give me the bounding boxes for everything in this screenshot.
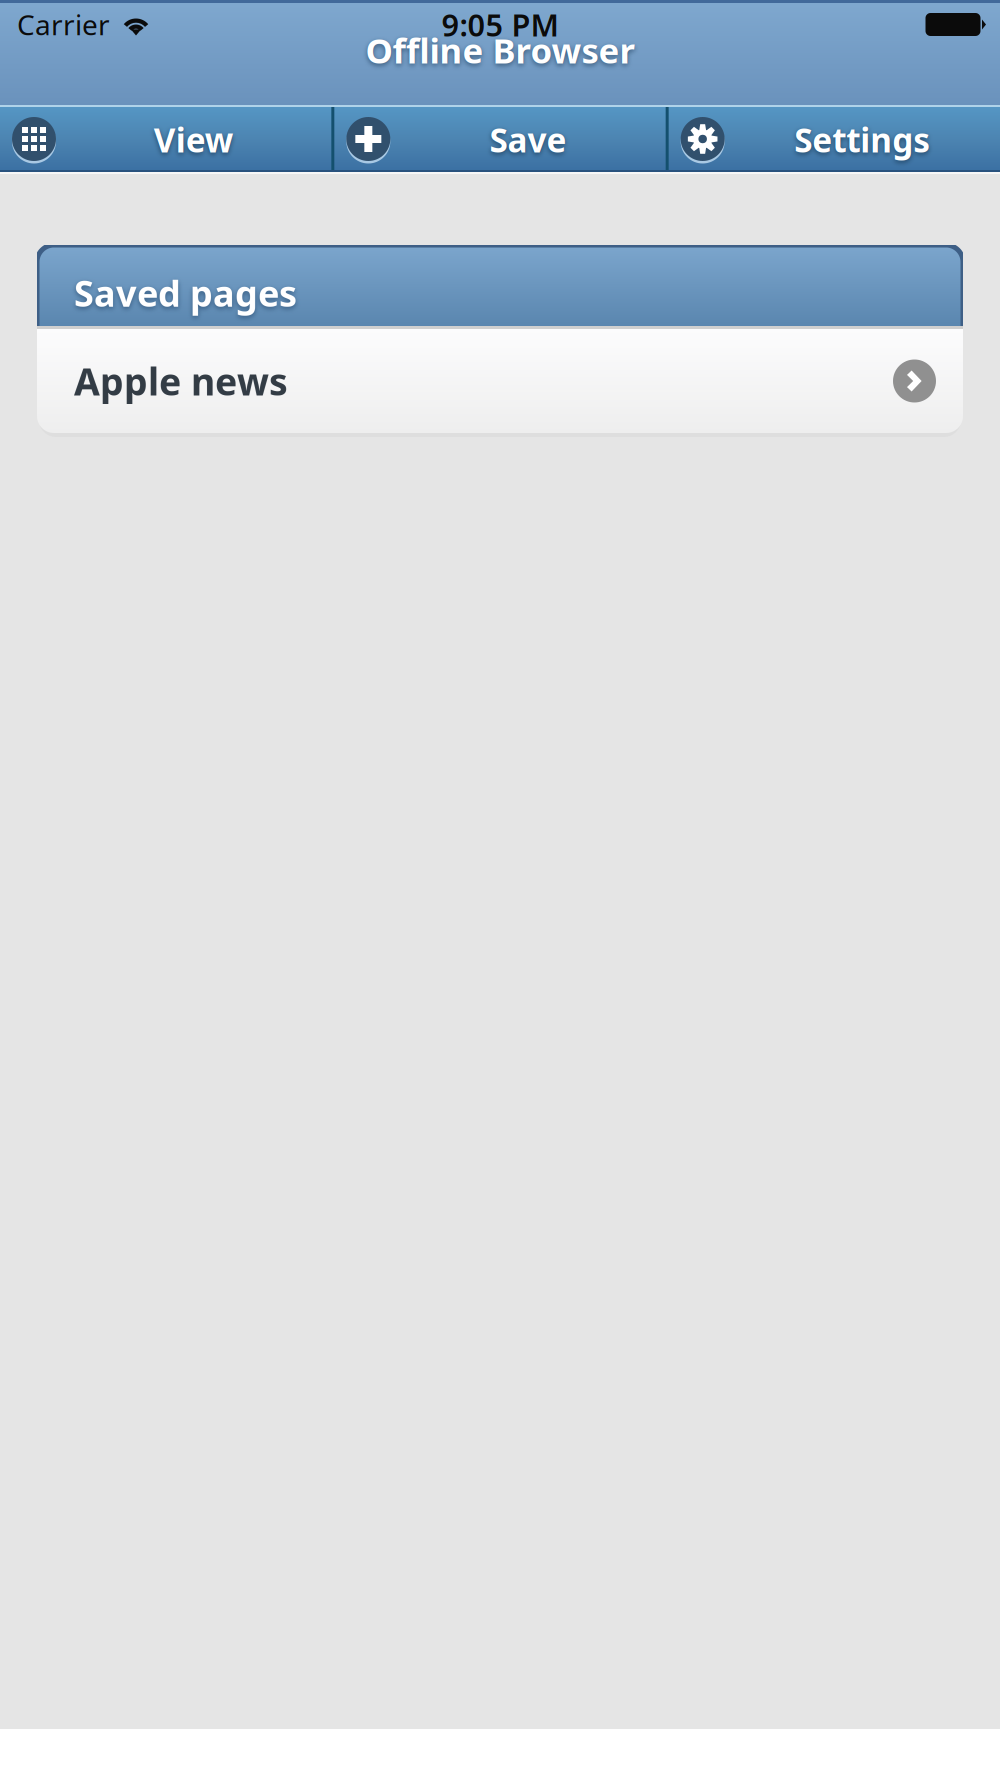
- staticText: Settings: [794, 117, 930, 162]
- staticText: Saved pages: [74, 269, 297, 317]
- button[interactable]: Settings: [669, 107, 1000, 172]
- staticText: Save: [489, 117, 566, 162]
- staticText: Offline Browser: [365, 27, 634, 73]
- staticText: 9:05 PM: [441, 4, 558, 45]
- staticText: Apple news: [74, 356, 288, 406]
- button[interactable]: Save: [334, 107, 666, 172]
- staticText: Carrier: [17, 6, 110, 43]
- staticText: View: [154, 117, 234, 162]
- button[interactable]: View: [0, 107, 331, 172]
- button[interactable]: Apple news: [37, 329, 963, 433]
